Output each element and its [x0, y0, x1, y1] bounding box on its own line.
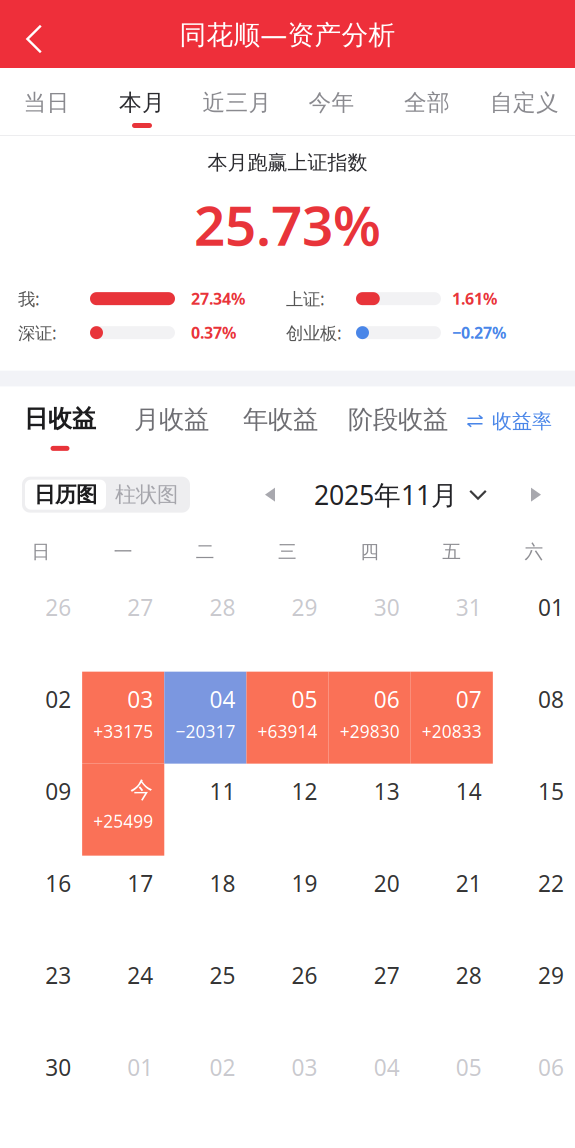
staticText: +29830 — [340, 719, 400, 743]
staticText: 月收益 — [134, 404, 209, 436]
staticText: 我: — [18, 287, 40, 310]
staticText: 四 — [360, 540, 379, 564]
staticText: 06 — [374, 684, 400, 715]
staticText: 04 — [209, 684, 235, 715]
staticText: 17 — [127, 868, 153, 899]
button[interactable]: 自定义 — [474, 68, 575, 135]
button[interactable]: 柱状图 — [106, 480, 187, 510]
staticText: +63914 — [258, 719, 318, 743]
staticText: 29 — [538, 960, 564, 991]
staticText: 六 — [524, 540, 543, 564]
staticText: 16 — [45, 868, 71, 899]
staticText: 今年 — [308, 88, 354, 117]
staticText: 06 — [538, 1052, 564, 1083]
staticText: 07 — [456, 684, 482, 715]
staticText: +25499 — [93, 809, 153, 833]
staticText: 日收益 — [24, 404, 96, 434]
staticText: −20317 — [175, 719, 235, 743]
staticText: 25 — [209, 960, 235, 991]
staticText: 28 — [209, 592, 235, 623]
staticText: 01 — [538, 592, 564, 623]
staticText: 五 — [442, 540, 461, 564]
button[interactable]: 当日 — [0, 68, 93, 135]
staticText: 05 — [456, 1052, 482, 1083]
button[interactable]: 月收益 — [96, 387, 209, 463]
staticText: 日历图 — [34, 481, 97, 508]
button[interactable]: 近三月 — [191, 68, 283, 135]
staticText: 三 — [278, 540, 297, 564]
staticText: 25.73% — [194, 187, 381, 262]
staticText: 创业板: — [286, 321, 342, 344]
staticText: 一 — [114, 540, 133, 564]
staticText: 0.37% — [191, 322, 236, 344]
staticText: 09 — [45, 776, 71, 807]
staticText: 27 — [374, 960, 400, 991]
staticText: 02 — [209, 1052, 235, 1083]
staticText: 02 — [45, 684, 71, 715]
button[interactable]: 阶段收益 — [318, 387, 448, 463]
staticText: 18 — [209, 868, 235, 899]
staticText: 年收益 — [243, 404, 318, 436]
staticText: 11 — [209, 776, 235, 807]
button[interactable]: 日收益 — [0, 387, 96, 463]
staticText: 同花顺—资产分析 — [179, 16, 395, 52]
staticText: 30 — [374, 592, 400, 623]
staticText: 20 — [374, 868, 400, 899]
staticText: 05 — [292, 684, 318, 715]
staticText: 14 — [456, 776, 482, 807]
staticText: 深证: — [18, 321, 57, 344]
staticText: 日 — [32, 540, 51, 564]
staticText: 22 — [538, 868, 564, 899]
button[interactable]: Previous month — [251, 473, 289, 517]
staticText: 近三月 — [202, 88, 271, 117]
staticText: 26 — [292, 960, 318, 991]
staticText: 15 — [538, 776, 564, 807]
staticText: 自定义 — [490, 88, 559, 117]
button[interactable]: 日历图 — [25, 480, 106, 510]
staticText: 12 — [292, 776, 318, 807]
staticText: −0.27% — [452, 322, 506, 344]
staticText: 31 — [456, 592, 482, 623]
staticText: 收益率 — [492, 409, 552, 434]
staticText: 29 — [292, 592, 318, 623]
staticText: 01 — [127, 1052, 153, 1083]
button[interactable]: 全部 — [380, 68, 474, 135]
staticText: 03 — [292, 1052, 318, 1083]
staticText: 24 — [127, 960, 153, 991]
staticText: 本月跑赢上证指数 — [207, 150, 367, 175]
button[interactable]: Choose month — [463, 473, 493, 517]
staticText: 21 — [456, 868, 482, 899]
staticText: 19 — [292, 868, 318, 899]
staticText: 13 — [374, 776, 400, 807]
staticText: 08 — [538, 684, 564, 715]
staticText: 30 — [45, 1052, 71, 1083]
button[interactable]: 年收益 — [209, 387, 318, 463]
staticText: 26 — [45, 592, 71, 623]
staticText: 04 — [374, 1052, 400, 1083]
staticText: 柱状图 — [115, 481, 178, 508]
staticText: 28 — [456, 960, 482, 991]
button[interactable]: 今年 — [283, 68, 380, 135]
staticText: 上证: — [286, 287, 325, 310]
button[interactable]: Next month — [517, 473, 555, 517]
staticText: 23 — [45, 960, 71, 991]
staticText: 全部 — [404, 88, 450, 117]
staticText: 1.61% — [452, 288, 497, 310]
staticText: +20833 — [422, 719, 482, 743]
staticText: 今 — [130, 776, 153, 804]
staticText: 阶段收益 — [348, 404, 448, 436]
staticText: 本月 — [119, 88, 165, 117]
staticText: 27.34% — [191, 288, 245, 310]
staticText: 当日 — [23, 88, 69, 117]
button[interactable]: 本月 — [93, 68, 191, 135]
button[interactable]: Back — [0, 0, 68, 68]
staticText: 27 — [127, 592, 153, 623]
staticText: 2025年11月 — [314, 476, 458, 513]
staticText: +33175 — [93, 719, 153, 743]
staticText: 二 — [196, 540, 215, 564]
button[interactable]: 收益率 — [467, 387, 575, 463]
staticText: 03 — [127, 684, 153, 715]
